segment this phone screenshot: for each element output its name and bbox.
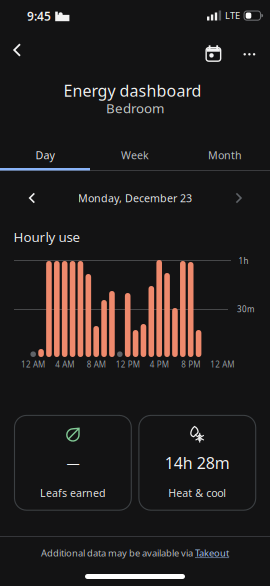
staticText: 30m [237,304,254,314]
button[interactable]: — [14,415,131,510]
staticText: 12 PM [116,359,140,370]
staticText: Additional data may be available via [41,547,195,559]
staticText: Monday, December 23 [78,191,192,205]
staticText: 12 AM [210,359,234,370]
staticText: Heat & cool [168,486,226,500]
staticText: Week [121,148,149,162]
staticText: Leafs earned [40,486,106,500]
staticText: Takeout [195,547,229,559]
button[interactable]: Day [0,142,90,168]
button[interactable]: Week [90,142,180,168]
staticText: 8 AM [87,359,106,370]
staticText: 14h 28m [165,452,230,473]
button[interactable] [234,39,264,69]
staticText: 8 PM [181,359,200,370]
staticText: 1h [238,255,248,266]
staticText: Day [35,148,54,162]
button[interactable] [0,33,34,67]
button[interactable]: 14h 28m [139,415,256,510]
button[interactable] [222,181,256,215]
button[interactable]: Additional data may be available via [41,547,229,559]
staticText: Energy dashboard [63,80,201,101]
button[interactable] [15,181,49,215]
staticText: 4 AM [55,359,74,370]
staticText: Month [208,148,242,162]
staticText: 12 AM [21,359,45,370]
staticText: Bedroom [106,99,164,117]
button[interactable] [199,38,227,66]
staticText: LTE [225,9,240,22]
staticText: 9:45 [27,8,51,24]
staticText: — [66,454,79,472]
staticText: 4 PM [150,359,169,370]
staticText: Hourly use [13,228,80,246]
button[interactable]: Month [180,142,270,168]
